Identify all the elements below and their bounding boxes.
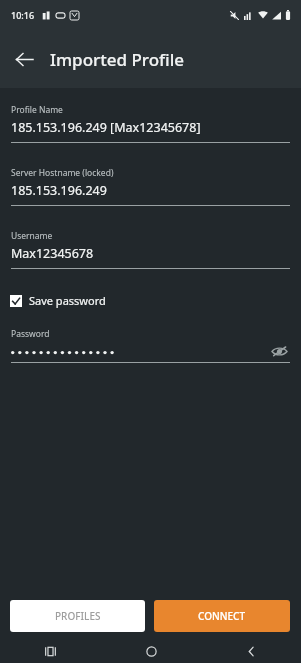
button[interactable]: PROFILES <box>10 600 145 632</box>
staticText: PROFILES <box>55 609 101 623</box>
button[interactable]: Back <box>201 640 301 663</box>
button[interactable]: Recents <box>0 640 101 663</box>
staticText: Password <box>11 328 50 340</box>
staticText: 10:16 <box>11 9 35 21</box>
staticText: 185.153.196.249 <box>11 182 107 199</box>
staticText: Server Hostname (locked) <box>11 167 114 179</box>
staticText: Max12345678 <box>11 245 94 262</box>
button[interactable]: Back <box>4 39 44 79</box>
button[interactable]: CONNECT <box>154 600 290 632</box>
button[interactable]: Server Hostname (locked) <box>0 167 301 206</box>
staticText: 185.153.196.249 [Max12345678] <box>11 119 201 136</box>
staticText: Imported Profile <box>50 48 185 71</box>
button[interactable]: Save password <box>0 291 301 310</box>
staticText: CONNECT <box>198 609 246 623</box>
button[interactable]: Show password <box>268 344 290 359</box>
staticText: Username <box>11 230 53 242</box>
button[interactable]: Username <box>0 230 301 269</box>
button[interactable]: Home <box>101 640 201 663</box>
staticText: Save password <box>29 293 106 308</box>
button[interactable]: Profile Name <box>0 104 301 143</box>
staticText: Profile Name <box>11 104 63 116</box>
